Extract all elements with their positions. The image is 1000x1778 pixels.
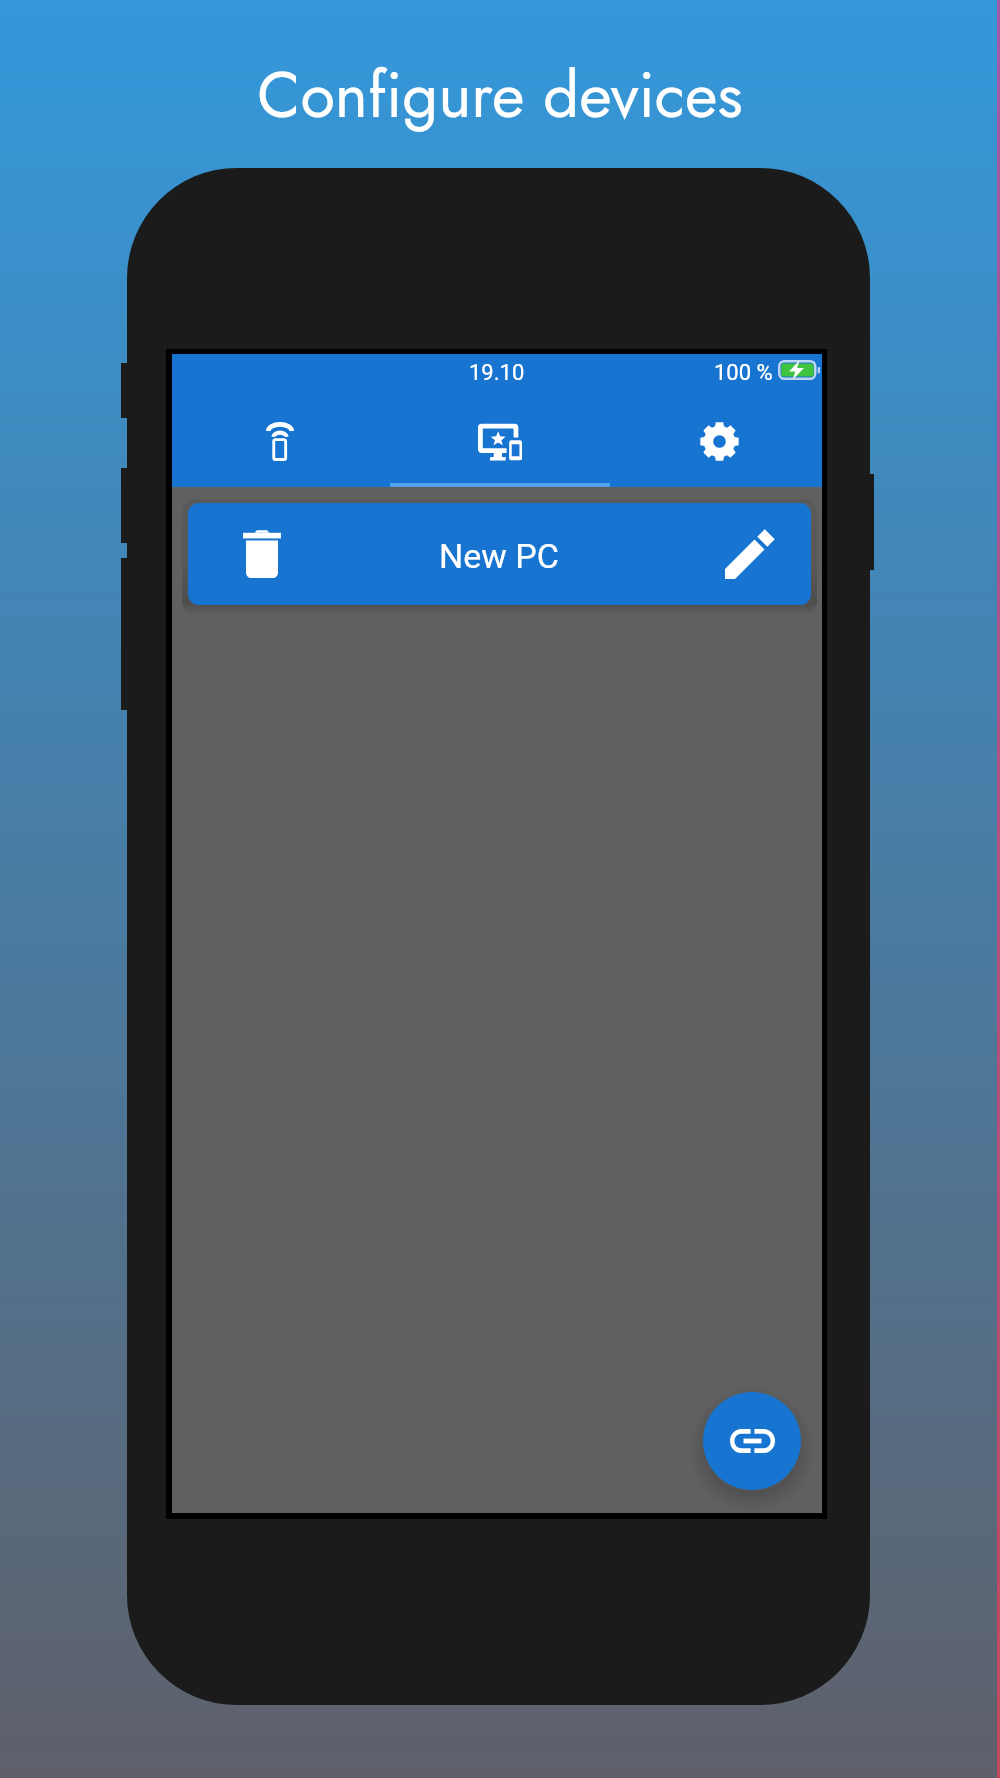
staticText: 100 % [714,360,773,386]
button[interactable]: Delete device [188,503,336,605]
button[interactable]: Delete device [188,503,811,605]
button[interactable]: Devices [388,390,605,487]
staticText: Configure devices [257,50,743,141]
button[interactable]: Rename device [687,503,811,605]
button[interactable]: Settings [605,390,822,487]
staticText: 19.10 [469,360,525,386]
staticText: New PC [439,536,559,576]
button[interactable]: Link a new device [703,1392,801,1490]
button[interactable]: Remote control [172,390,388,487]
